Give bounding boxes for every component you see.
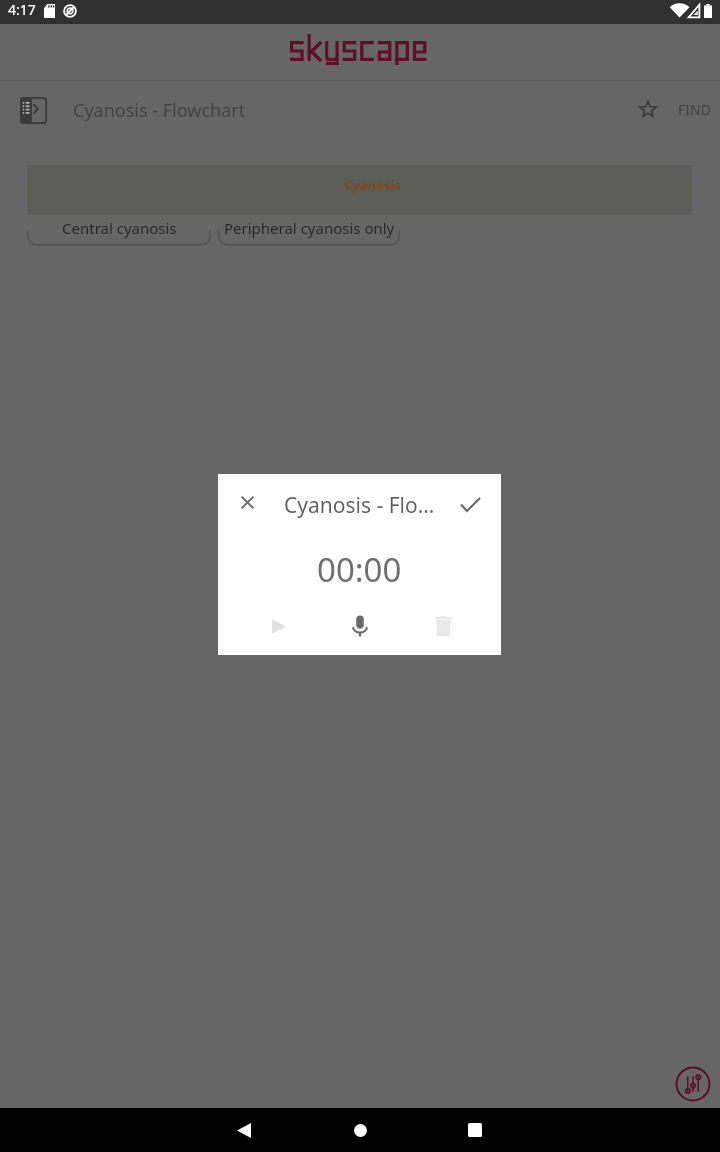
staticText: Central cyanosis [62, 218, 177, 238]
staticText: Peripheral cyanosis only [224, 218, 395, 238]
button[interactable]: Recent apps [427, 1108, 523, 1152]
staticText: 00:00 [317, 547, 402, 592]
button[interactable]: Play [261, 608, 297, 644]
button[interactable]: FIND [672, 90, 717, 128]
staticText: FIND [678, 100, 711, 119]
button[interactable]: Back [196, 1108, 292, 1152]
button[interactable]: Table of contents [14, 91, 52, 129]
button[interactable]: Record [342, 608, 378, 644]
button[interactable]: Delete [425, 608, 461, 644]
button[interactable]: Close [230, 485, 264, 519]
button[interactable]: Display settings [673, 1064, 713, 1104]
button[interactable]: Save recording [454, 488, 486, 520]
staticText: Cyanosis [344, 176, 402, 194]
staticText: Cyanosis - Flowchart [73, 98, 246, 123]
button[interactable]: Add to favorites [629, 90, 667, 128]
staticText: Cyanosis - Flo… [284, 491, 435, 519]
staticText: 4:17 [8, 0, 36, 19]
button[interactable]: Peripheral cyanosis only [218, 214, 400, 246]
button[interactable]: Home [312, 1108, 408, 1152]
button[interactable]: Central cyanosis [27, 214, 211, 246]
